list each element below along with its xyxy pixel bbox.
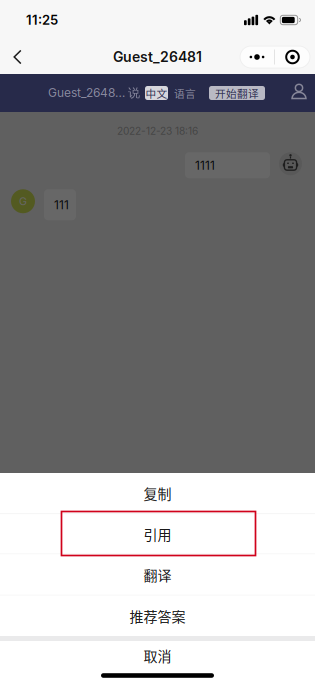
button[interactable]: 复制 xyxy=(0,473,315,513)
staticText: 复制 xyxy=(143,483,171,503)
button[interactable]: 中文 xyxy=(145,86,168,100)
button[interactable]: 开始翻译 xyxy=(209,86,265,100)
button[interactable]: 翻译 xyxy=(0,554,315,595)
staticText: Guest_2648… 说 xyxy=(48,85,140,101)
staticText: 语言 xyxy=(174,85,196,101)
staticText: 中文 xyxy=(145,85,167,101)
staticText: Guest_26481 xyxy=(113,48,202,65)
staticText: 111 xyxy=(54,197,69,212)
button[interactable]: Back xyxy=(0,40,35,74)
button[interactable]: 推荐答案 xyxy=(0,596,315,636)
button[interactable]: 引用 xyxy=(0,514,315,554)
staticText: G xyxy=(19,195,27,208)
staticText: 推荐答案 xyxy=(129,606,185,626)
button[interactable]: 取消 xyxy=(0,641,315,670)
staticText: 11:25 xyxy=(26,12,58,28)
staticText: 2022-12-23 18:16 xyxy=(117,125,198,137)
button[interactable]: More options xyxy=(240,46,315,68)
staticText: 翻译 xyxy=(143,564,171,585)
staticText: 开始翻译 xyxy=(215,85,259,101)
staticText: 取消 xyxy=(143,645,171,666)
staticText: 1111 xyxy=(195,158,215,172)
button[interactable]: Members xyxy=(283,74,315,112)
staticText: 引用 xyxy=(143,524,171,544)
